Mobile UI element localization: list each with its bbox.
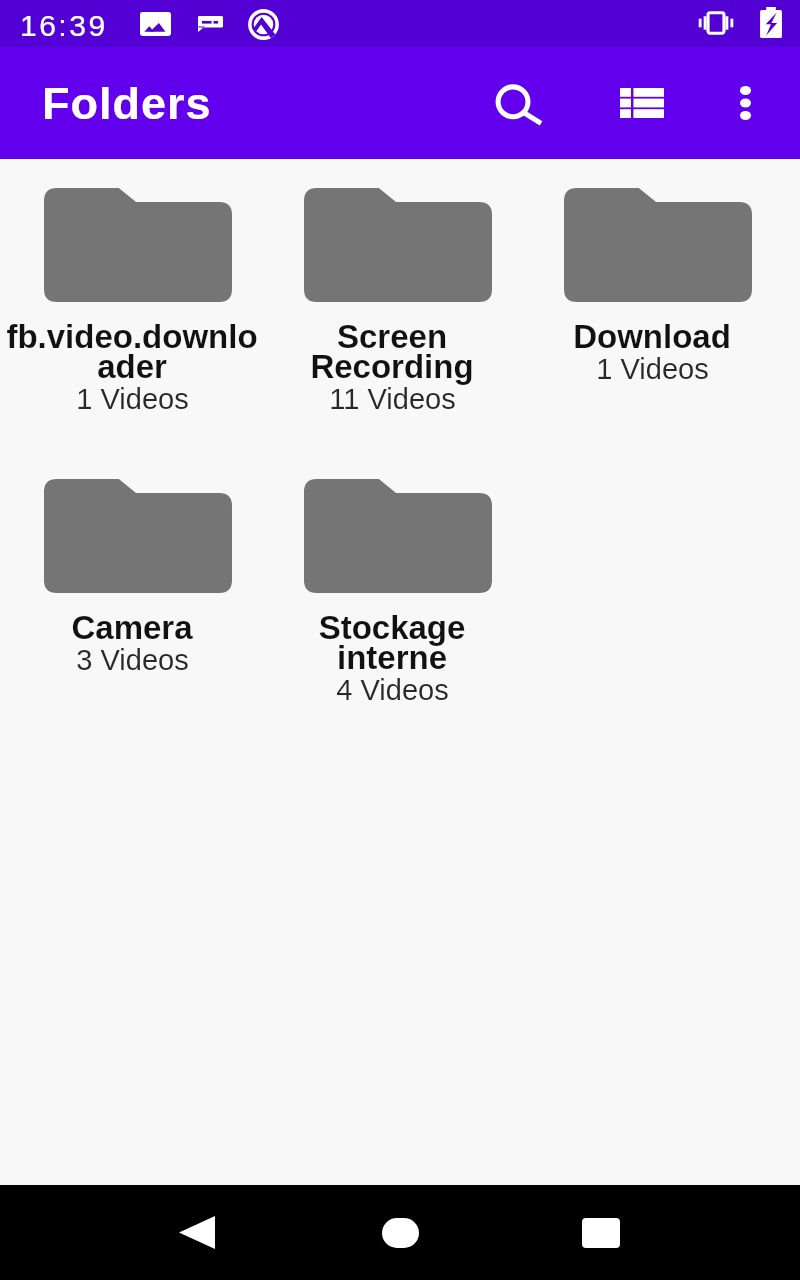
- staticText: Camera: [6, 609, 258, 646]
- button[interactable]: Home: [365, 1185, 435, 1280]
- button[interactable]: fb.video.downloader: [8, 159, 268, 450]
- button[interactable]: Camera: [8, 450, 268, 741]
- staticText: Screen Recording: [266, 318, 518, 385]
- staticText: 1 Videos: [596, 353, 709, 385]
- staticText: fb.video.downloader: [6, 318, 258, 385]
- staticText: Folders: [42, 78, 212, 128]
- staticText: 3 Videos: [76, 644, 189, 676]
- button[interactable]: Stockage interne: [268, 450, 528, 741]
- button[interactable]: Recent apps: [565, 1185, 635, 1280]
- staticText: 4 Videos: [336, 674, 449, 706]
- staticText: 11 Videos: [329, 383, 456, 415]
- button[interactable]: Screen Recording: [268, 159, 528, 450]
- staticText: 1 Videos: [76, 383, 189, 415]
- button[interactable]: Back: [162, 1185, 232, 1280]
- button[interactable]: Search: [483, 75, 555, 147]
- button[interactable]: View list: [606, 67, 678, 139]
- button[interactable]: Download: [528, 159, 788, 450]
- staticText: Download: [526, 318, 778, 355]
- staticText: 16:39: [20, 9, 108, 43]
- staticText: Stockage interne: [266, 609, 518, 676]
- button[interactable]: More options: [709, 67, 781, 139]
